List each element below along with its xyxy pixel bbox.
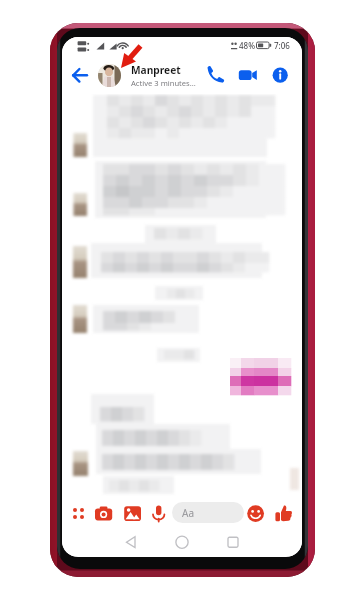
button[interactable]: Recent apps <box>223 532 243 552</box>
button[interactable]: More options <box>69 504 89 524</box>
button[interactable]: Back <box>121 532 141 552</box>
staticText: 7:06 <box>274 40 290 51</box>
button[interactable]: Send a like <box>274 504 294 524</box>
staticText: 48% <box>239 40 255 51</box>
button[interactable]: Gallery <box>123 504 143 524</box>
staticText: Manpreet <box>131 63 181 77</box>
button[interactable]: Record voice message <box>149 504 169 524</box>
button[interactable]: Manpreet <box>98 59 228 91</box>
button[interactable]: Voice call <box>202 62 228 88</box>
button[interactable]: Aa <box>172 502 244 523</box>
button[interactable]: Back <box>67 62 93 88</box>
staticText: Aa <box>182 506 194 520</box>
button[interactable]: Camera <box>94 504 114 524</box>
button[interactable]: Conversation information <box>267 62 293 88</box>
button[interactable]: Home <box>172 532 192 552</box>
staticText: Active 3 minutes... <box>131 78 196 88</box>
button[interactable]: Choose a sticker <box>246 504 266 524</box>
button[interactable]: Video call <box>235 62 261 88</box>
